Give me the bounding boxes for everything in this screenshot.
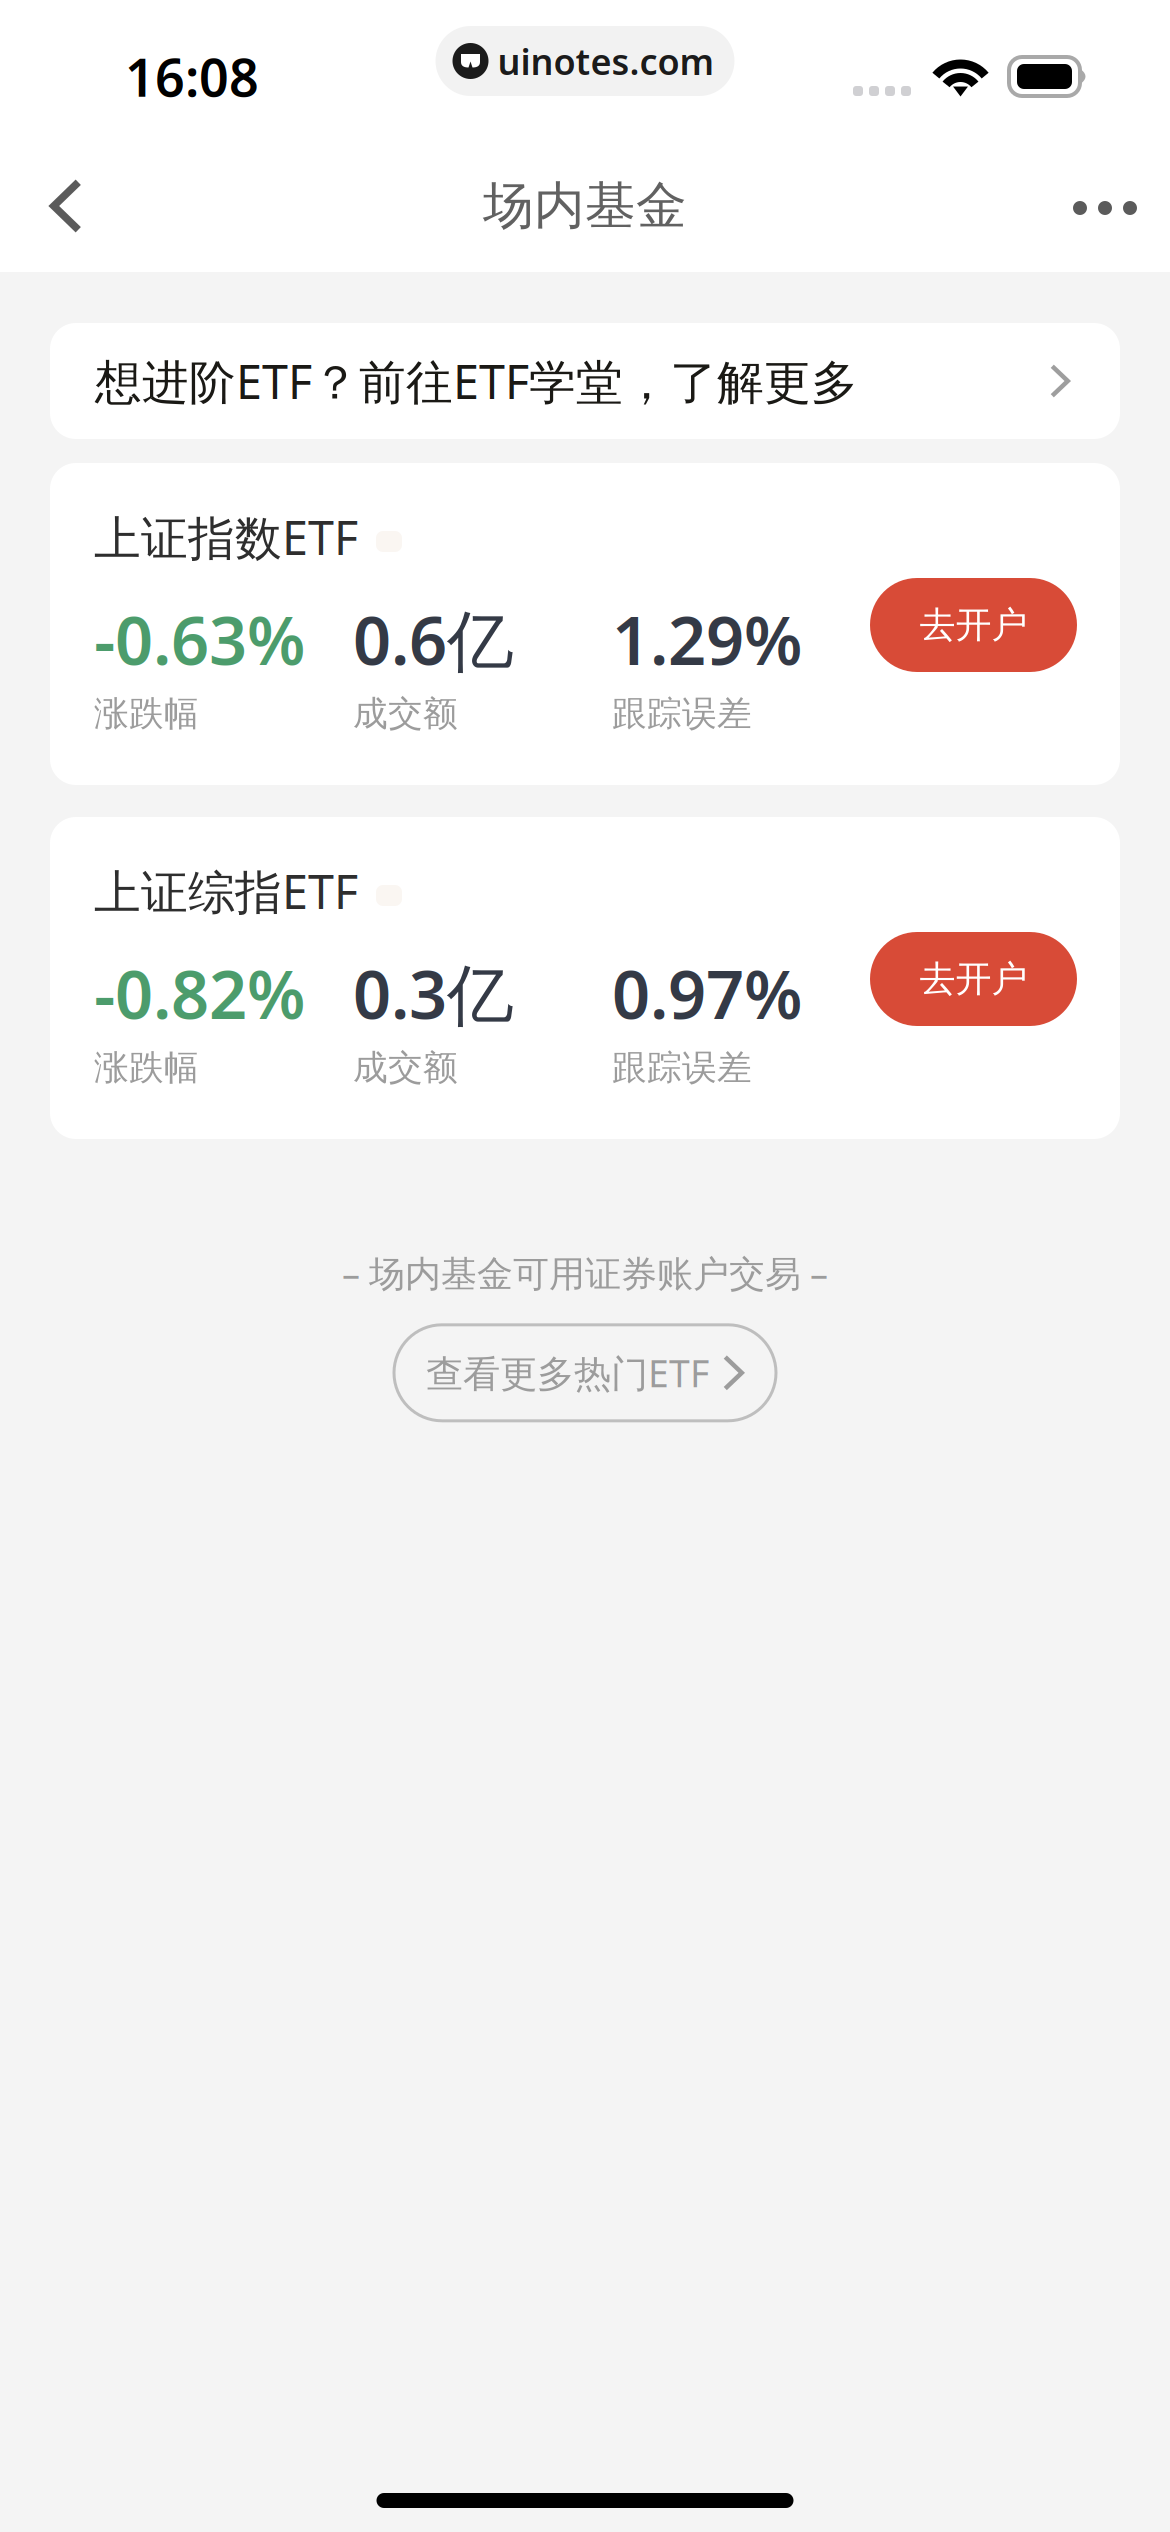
staticText: 场内基金 [483,175,687,237]
staticText: 去开户 [919,957,1027,1001]
button[interactable]: 返回 [7,144,125,268]
staticText: -0.82% [94,949,305,1037]
button[interactable]: 查看更多热门ETF [394,1325,776,1421]
staticText: 0.97% [612,949,802,1037]
staticText: 上证指数ETF [94,506,358,568]
staticText: – 场内基金可用证券账户交易 – [342,1249,828,1297]
staticText: 0.6亿 [353,595,514,683]
staticText: uinotes.com [497,37,714,85]
staticText: 涨跌幅 [94,1046,199,1089]
staticText: 想进阶ETF？前往ETF学堂，了解更多 [95,350,858,412]
staticText: 成交额 [353,692,458,735]
staticText: 成交额 [353,1046,458,1089]
staticText: 跟踪误差 [612,1046,752,1089]
staticText: -0.63% [94,595,305,683]
staticText: 涨跌幅 [94,692,199,735]
staticText: 跟踪误差 [612,692,752,735]
staticText: 1.29% [612,595,802,683]
button[interactable]: 去开户 [870,578,1077,672]
staticText: 0.3亿 [353,949,514,1037]
staticText: 上证综指ETF [94,860,358,922]
button[interactable]: 想进阶ETF？前往ETF学堂，了解更多 [50,323,1120,439]
button[interactable]: 去开户 [870,932,1077,1026]
button[interactable]: 更多 [1046,144,1164,268]
staticText: 查看更多热门ETF [426,1348,709,1398]
staticText: 去开户 [919,603,1027,647]
staticText: 16:08 [125,42,259,111]
